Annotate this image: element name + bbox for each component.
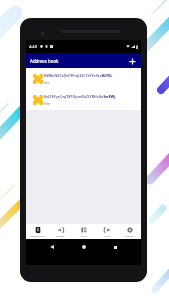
button[interactable]: 0eLFEFyeCwjTKFQumGbZLYRHvGd: [26, 89, 141, 110]
staticText: Address book: [30, 58, 59, 64]
staticText: 0eLFEFyeCwjTKFQumGbZLYRHvGd: [44, 94, 104, 99]
staticText: Wallet: [80, 235, 87, 238]
button[interactable]: Wallet: [72, 225, 95, 238]
staticText: Settings: [125, 235, 134, 238]
button[interactable]: 849BcNGCsQvF9Ftq/2SC7zYVv9s: [26, 68, 141, 89]
staticText: cKLFEL: [100, 73, 113, 78]
staticText: Peter: [44, 102, 51, 106]
button[interactable]: Back: [47, 242, 57, 252]
staticText: Register: [56, 235, 65, 238]
staticText: Address book: [30, 235, 45, 238]
staticText: Send: [104, 235, 110, 238]
button[interactable]: Add contact: [126, 55, 138, 67]
button[interactable]: Address book: [26, 225, 49, 238]
button[interactable]: Home: [79, 242, 89, 252]
button[interactable]: Send: [95, 225, 118, 238]
button[interactable]: Register: [49, 225, 72, 238]
button[interactable]: Recent apps: [110, 242, 120, 252]
staticText: John: [44, 81, 50, 85]
button[interactable]: Settings: [118, 225, 141, 238]
staticText: 849BcNGCsQvF9Ftq/2SC7zYVv9s: [44, 73, 100, 78]
staticText: 4:40: [29, 44, 37, 49]
staticText: hnFWj: [104, 94, 116, 99]
